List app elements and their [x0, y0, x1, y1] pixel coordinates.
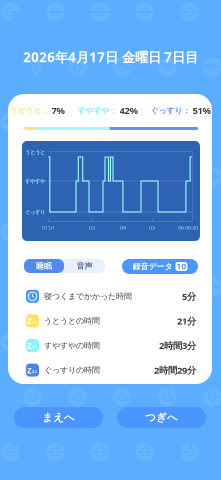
- button[interactable]: 睡眠: [24, 259, 64, 273]
- staticText: 2時間29分: [154, 364, 196, 376]
- staticText: 06: [178, 224, 184, 231]
- staticText: 05: [149, 224, 155, 231]
- staticText: 06:30: [185, 224, 198, 231]
- staticText: z: [35, 319, 37, 325]
- staticText: 睡眠: [36, 261, 52, 271]
- button[interactable]: 音声: [64, 259, 105, 273]
- staticText: 録音データ: [132, 262, 172, 271]
- staticText: Z: [27, 316, 32, 326]
- button[interactable]: Z: [8, 333, 212, 358]
- staticText: 03: [89, 224, 95, 231]
- staticText: うとうと：: [9, 106, 49, 115]
- staticText: 寝つくまでかかった時間: [44, 291, 132, 301]
- staticText: z: [32, 367, 35, 374]
- staticText: 7%: [51, 104, 64, 117]
- staticText: z: [32, 342, 35, 350]
- staticText: うとうとの時間: [44, 316, 100, 326]
- staticText: Z: [27, 365, 32, 376]
- button[interactable]: Z: [8, 358, 212, 382]
- staticText: z: [35, 344, 37, 349]
- staticText: まえへ: [42, 411, 75, 424]
- staticText: ぐっすり：: [150, 106, 190, 115]
- staticText: 51%: [192, 104, 210, 117]
- staticText: ぐっすり: [25, 209, 45, 216]
- staticText: ぐっすりの時間: [44, 365, 100, 375]
- staticText: 01:51: [42, 224, 55, 231]
- staticText: 5分: [182, 290, 196, 302]
- staticText: Z: [27, 340, 32, 351]
- button[interactable]: Z: [8, 309, 212, 333]
- staticText: つぎへ: [145, 411, 178, 424]
- staticText: 2026年4月17日 金曜日 7日目: [23, 48, 198, 66]
- staticText: 42%: [119, 104, 137, 117]
- staticText: z: [32, 318, 35, 325]
- button[interactable]: つぎへ: [117, 407, 206, 428]
- staticText: すやすや：: [77, 106, 117, 115]
- staticText: 04: [120, 224, 126, 231]
- staticText: 10: [176, 261, 186, 272]
- button[interactable]: 録音データ: [122, 259, 198, 274]
- staticText: 21分: [177, 315, 196, 327]
- button[interactable]: まえへ: [14, 407, 103, 428]
- staticText: 2時間3分: [159, 339, 196, 352]
- staticText: 音声: [76, 261, 92, 271]
- staticText: z: [35, 369, 37, 374]
- staticText: すやすや: [25, 178, 45, 185]
- button[interactable]: 寝つくまでかかった時間: [8, 284, 212, 309]
- staticText: うとうと: [25, 149, 45, 156]
- staticText: すやすやの時間: [44, 341, 100, 350]
